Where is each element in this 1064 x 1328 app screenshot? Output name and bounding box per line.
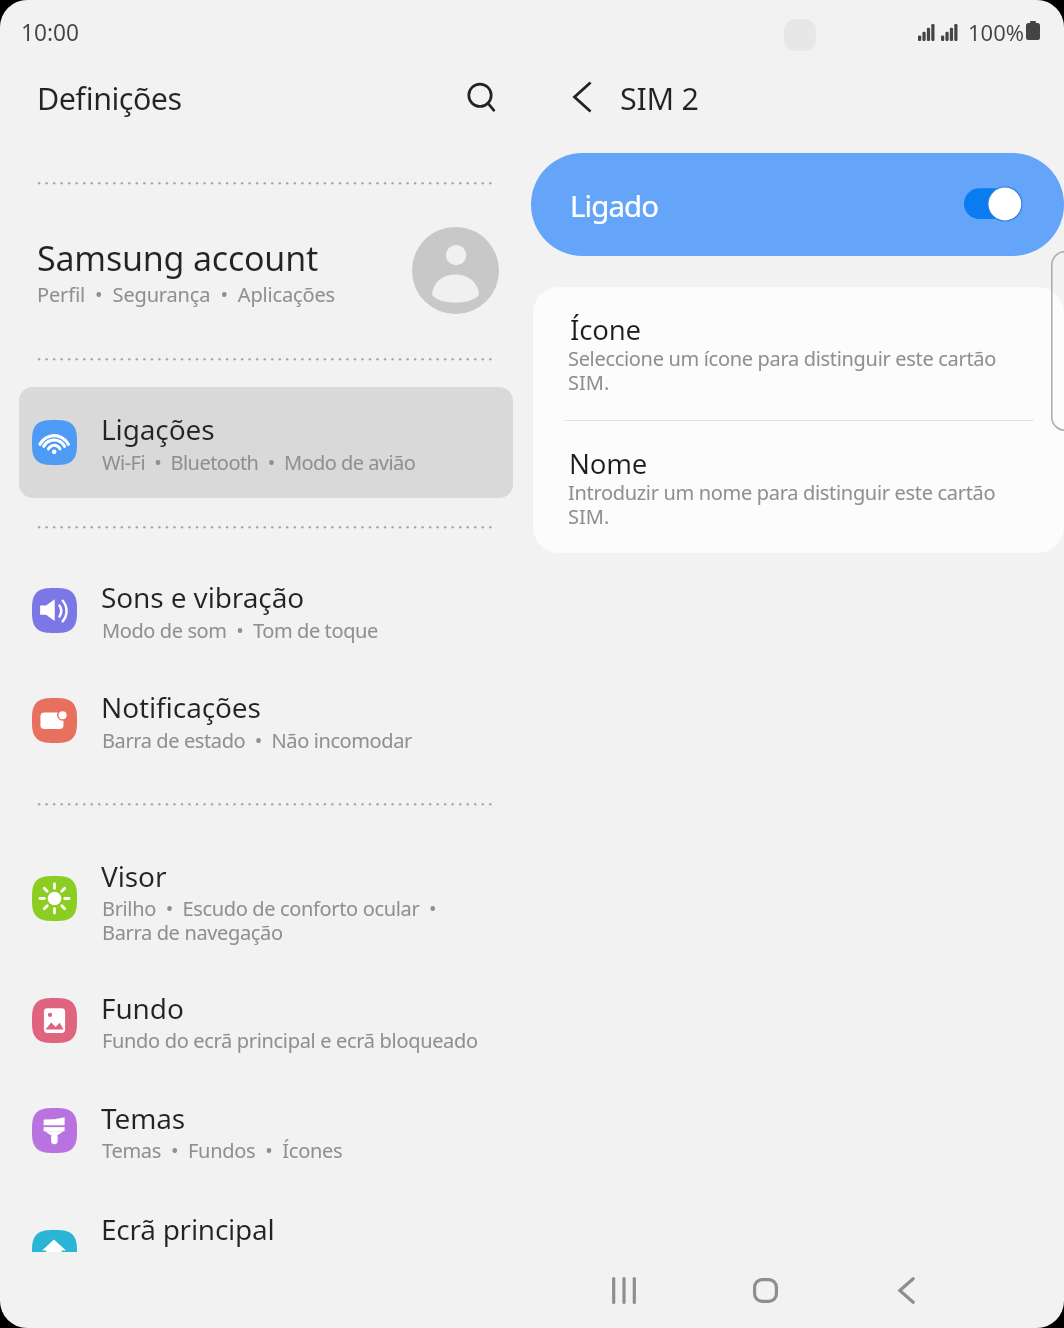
button[interactable]: Home [731,1256,799,1324]
staticText: Ligações [101,410,215,448]
staticText: SIM 2 [620,77,699,119]
button[interactable]: Search [454,69,506,121]
staticText: Barra de estado • Não incomodar [102,727,412,754]
staticText: 100% [968,17,1025,47]
staticText: Wi-Fi • Bluetooth • Modo de avião [102,449,416,476]
staticText: Fundo [101,989,184,1027]
button[interactable]: Fundo [19,966,513,1076]
staticText: Ligado [570,186,659,226]
staticText: Fundo do ecrã principal e ecrã bloqueado [102,1027,478,1054]
button[interactable]: Notificações [19,665,513,775]
button[interactable]: Ecrã principal [19,1186,513,1252]
button[interactable]: Samsung account [19,218,513,318]
staticText: Visor [101,857,167,895]
staticText: Nome [569,444,648,482]
staticText: Notificações [101,688,261,726]
button[interactable]: Temas [19,1076,513,1186]
staticText: Brilho • Escudo de conforto ocular • [102,895,437,922]
staticText: SIM. [568,503,610,530]
staticText: Ícone [570,310,641,348]
staticText: Ecrã principal [101,1210,275,1248]
button[interactable]: Back [872,1256,940,1324]
staticText: Modo de som • Tom de toque [102,617,378,644]
button[interactable] [533,287,1064,553]
staticText: Seleccione um ícone para distinguir este… [568,345,996,372]
staticText: Temas [101,1099,186,1137]
button[interactable]: Visor [19,832,513,964]
button[interactable]: Ligações [19,387,513,498]
staticText: Barra de navegação [102,919,283,946]
staticText: 10:00 [21,17,79,48]
button[interactable] [531,153,1064,256]
button[interactable]: Back [556,71,608,123]
staticText: Introduzir um nome para distinguir este … [568,479,996,506]
button[interactable] [533,421,1064,553]
staticText: Perfil • Segurança • Aplicações [37,281,335,308]
button[interactable]: Sons e vibração [19,555,513,665]
staticText: Sons e vibração [101,578,305,616]
staticText: Definições [37,77,182,119]
button[interactable]: Recent apps [590,1256,658,1324]
staticText: SIM. [568,369,610,396]
staticText: Temas • Fundos • Ícones [102,1137,343,1164]
staticText: Samsung account [37,235,319,281]
